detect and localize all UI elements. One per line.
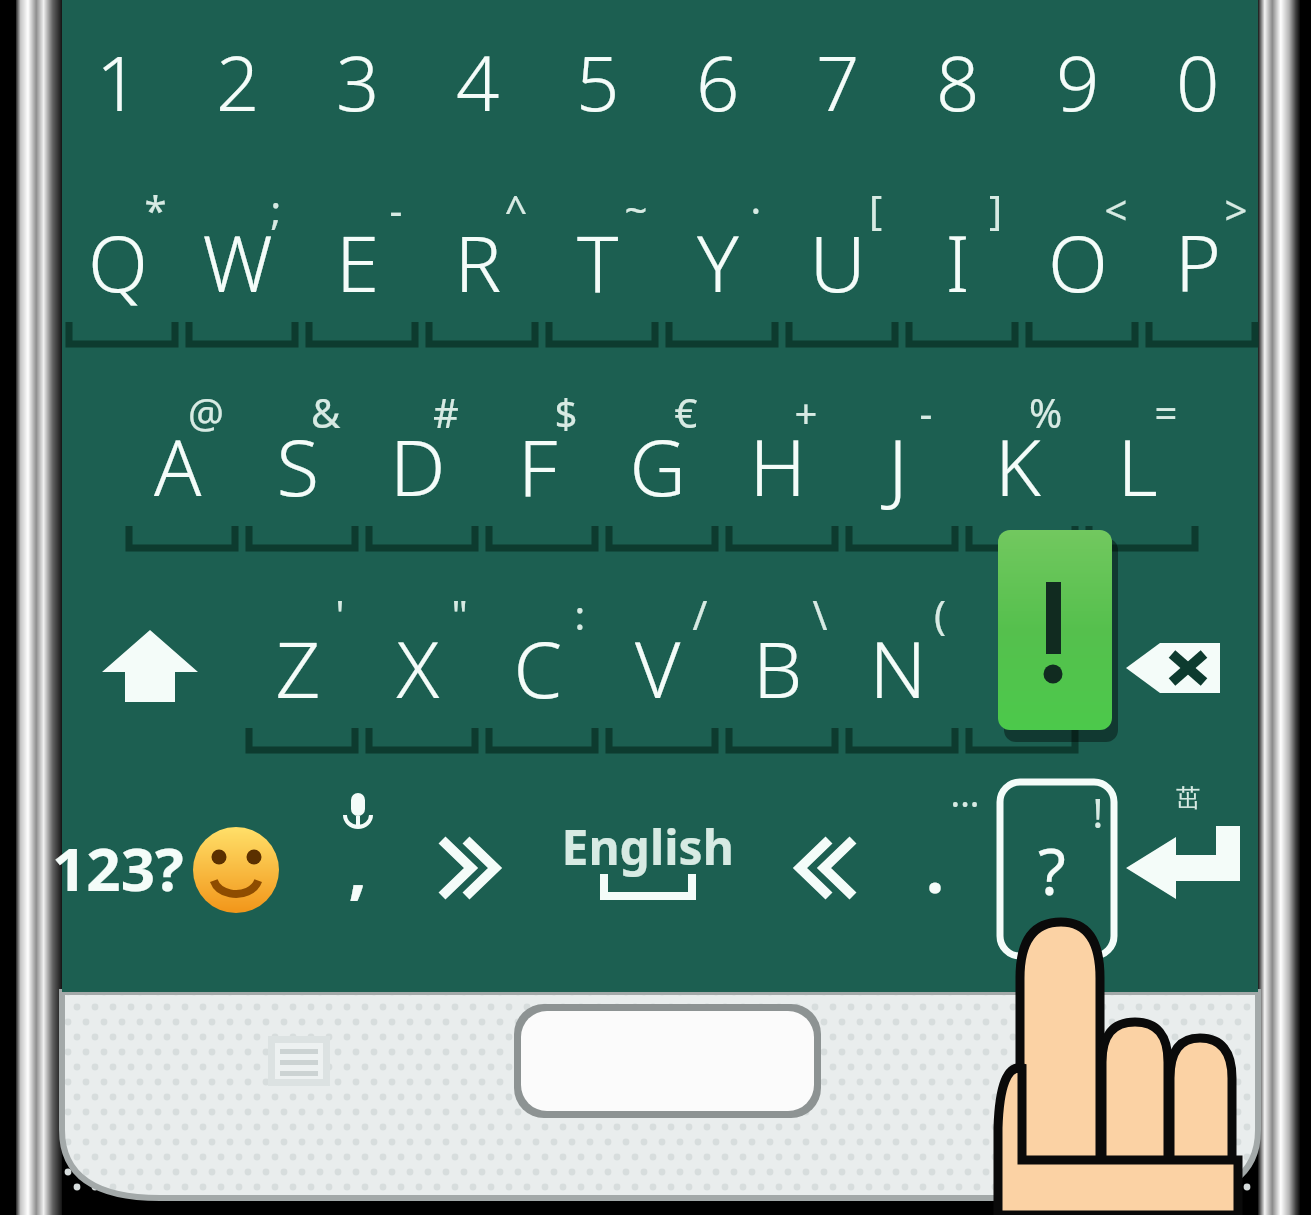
button[interactable]: Samsung keyboard screen bbox=[0, 0, 1311, 1215]
